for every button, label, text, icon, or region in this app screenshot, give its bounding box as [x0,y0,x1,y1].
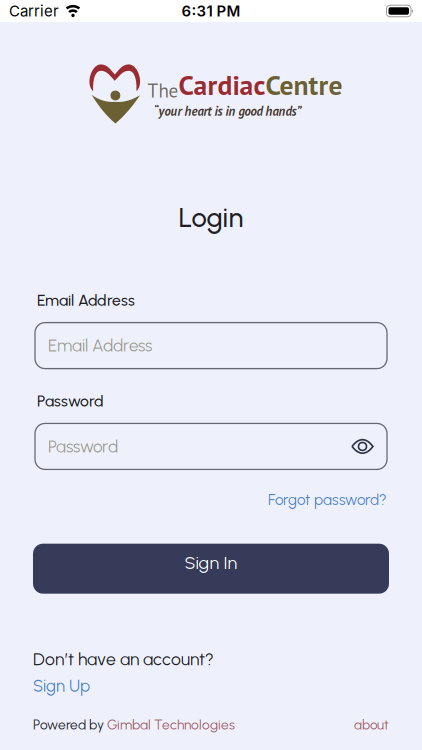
staticText: 6:31 [181,2,212,20]
staticText: Sign Up [33,676,90,696]
staticText: PM [216,2,240,20]
staticText: The [147,78,178,103]
button[interactable]: Password [35,423,387,469]
staticText: Cardiac [178,67,265,103]
staticText: Email Address [48,335,152,356]
staticText: Email Address [37,291,135,310]
staticText: Password [48,436,118,457]
button[interactable]: Forgot password? [268,490,387,509]
button[interactable]: Sign Up [33,676,90,696]
button[interactable]: Email Address [35,323,387,369]
textField[interactable]: Password [48,436,343,457]
staticText: Sign In [184,552,237,573]
staticText: Forgot password? [268,490,387,509]
staticText: Login [178,201,243,234]
button[interactable]: about [354,717,389,733]
staticText: Centre [265,67,342,103]
button[interactable]: Show password [351,437,374,455]
textField[interactable]: Email Address [48,335,374,356]
staticText: Password [37,392,104,410]
staticText: Gimbal Technologies [107,717,235,733]
staticText: about [354,717,389,733]
staticText: Don’t have an account? [33,649,214,670]
staticText: Powered by [33,717,107,733]
staticText: Carrier [9,2,59,20]
staticText: “your heart is in good hands” [153,103,301,119]
button[interactable]: Sign In [33,544,389,594]
